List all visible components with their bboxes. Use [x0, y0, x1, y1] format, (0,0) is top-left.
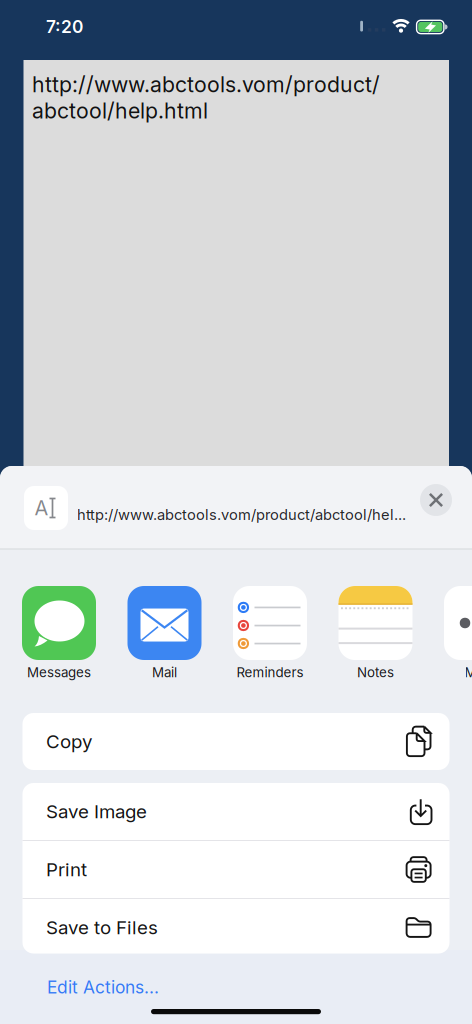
- staticText: Edit Actions...: [47, 977, 159, 997]
- staticText: abctool/help.html: [32, 98, 208, 123]
- button[interactable]: Save to Files: [22, 899, 449, 956]
- button[interactable]: Messages: [6, 586, 112, 685]
- staticText: Save Image: [46, 800, 147, 822]
- staticText: Save to Files: [46, 916, 158, 938]
- staticText: http://www.abctools.vom/product/abctool/…: [77, 506, 406, 523]
- staticText: http://www.abctools.vom/product/: [32, 72, 380, 97]
- button[interactable]: Print: [22, 841, 449, 898]
- button[interactable]: Notes: [323, 586, 428, 685]
- staticText: A: [34, 496, 48, 520]
- staticText: Print: [46, 858, 87, 880]
- staticText: Reminders: [236, 665, 303, 680]
- button[interactable]: Reminders: [217, 586, 323, 685]
- button[interactable]: Close: [420, 484, 452, 516]
- staticText: Notes: [357, 665, 394, 680]
- staticText: Messages: [27, 665, 91, 680]
- button[interactable]: Save Image: [22, 783, 449, 840]
- staticText: Mail: [152, 665, 177, 680]
- button[interactable]: Edit Actions...: [47, 977, 159, 997]
- staticText: 7:20: [46, 16, 83, 37]
- button[interactable]: More: [428, 586, 472, 685]
- button[interactable]: Copy: [22, 713, 449, 770]
- button[interactable]: Mail: [112, 586, 217, 685]
- staticText: Copy: [46, 730, 92, 752]
- staticText: More: [464, 665, 472, 680]
